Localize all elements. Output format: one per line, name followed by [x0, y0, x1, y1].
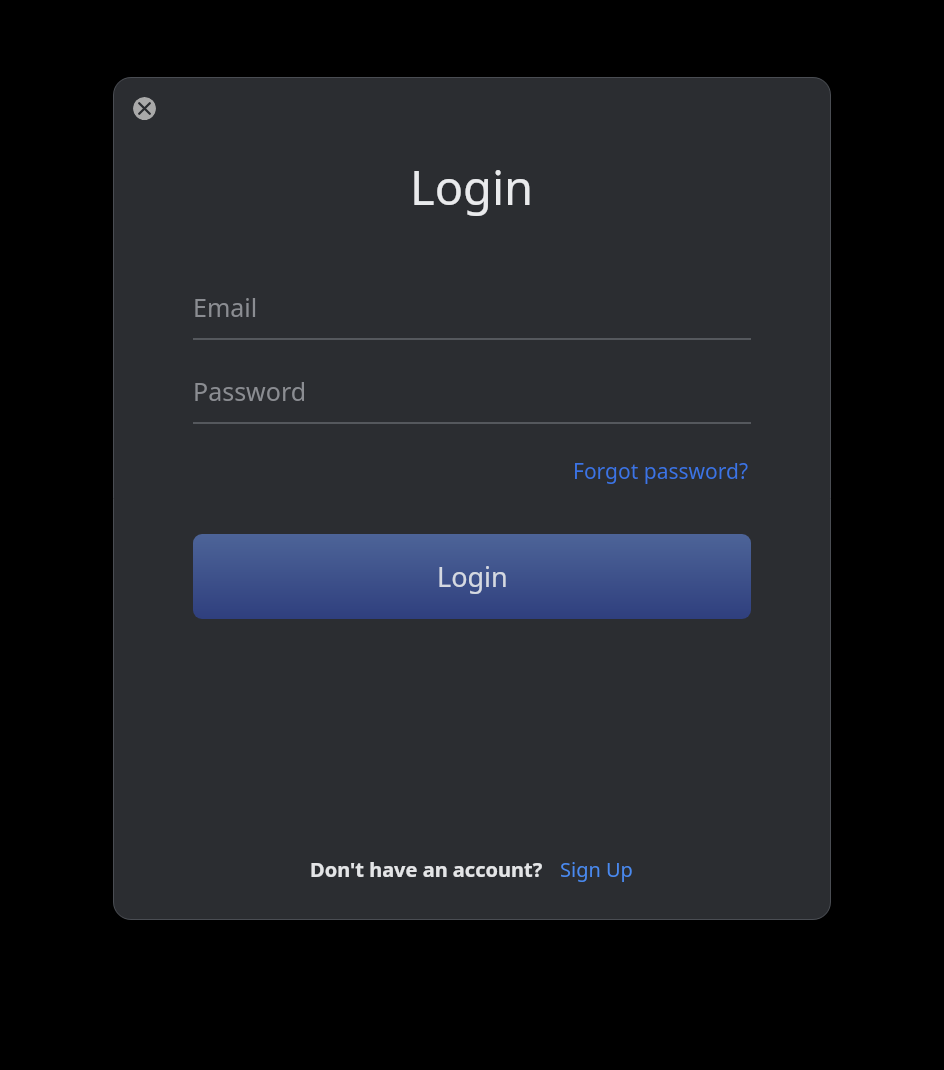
staticText: Email: [193, 290, 258, 324]
staticText: Forgot password?: [573, 457, 749, 486]
staticText: Sign Up: [560, 856, 633, 883]
staticText: Password: [193, 374, 307, 408]
staticText: Login: [410, 155, 534, 219]
button[interactable]: Password: [193, 360, 751, 424]
button[interactable]: Forgot password?: [571, 454, 751, 489]
staticText: Login: [437, 558, 508, 595]
staticText: Don't have an account?: [310, 856, 543, 883]
button[interactable]: Sign Up: [558, 853, 635, 886]
button[interactable]: Login: [193, 534, 751, 619]
button[interactable]: Email: [193, 276, 751, 340]
button[interactable]: Close: [133, 97, 156, 120]
